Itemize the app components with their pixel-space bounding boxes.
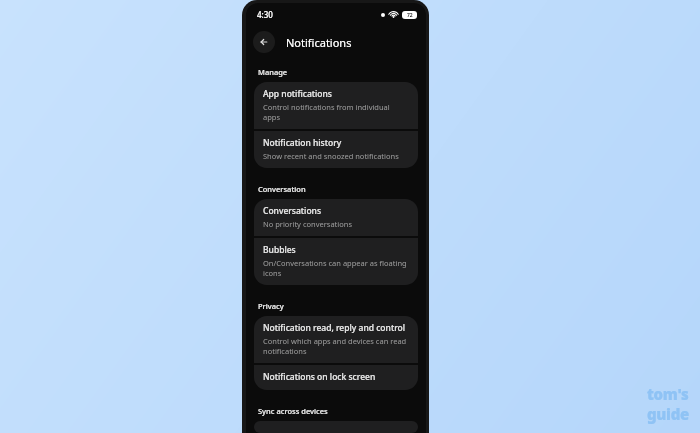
staticText: Conversation [258,184,306,194]
staticText: Conversations [263,205,322,217]
staticText: 4:30 [257,9,273,20]
staticText: On/Conversations can appear as floating … [263,258,407,278]
staticText: Show recent and snoozed notifications [263,151,399,161]
staticText: Sync across devices [258,406,328,416]
button[interactable]: App notifications [254,82,418,129]
staticText: No priority conversations [263,219,353,229]
staticText: tom's [647,384,689,404]
staticText: Privacy [258,301,284,311]
staticText: Notifications on lock screen [263,371,376,383]
staticText: guide [647,404,689,424]
button[interactable]: Back [253,31,275,53]
staticText: Notifications [286,35,352,50]
staticText: Control which apps and devices can read … [263,336,407,356]
staticText: Notification read, reply and control [263,322,406,334]
button[interactable]: Notification history [254,131,418,168]
button[interactable]: Notifications on lock screen [254,365,418,390]
button[interactable]: Notification read, reply and control [254,316,418,363]
button[interactable]: Conversations [254,199,418,236]
staticText: Bubbles [263,244,296,256]
staticText: App notifications [263,88,332,100]
staticText: Manage [258,67,288,77]
staticText: Control notifications from individual ap… [263,102,407,122]
staticText: 72 [407,12,413,19]
staticText: Notification history [263,137,342,149]
button[interactable]: Bubbles [254,238,418,285]
